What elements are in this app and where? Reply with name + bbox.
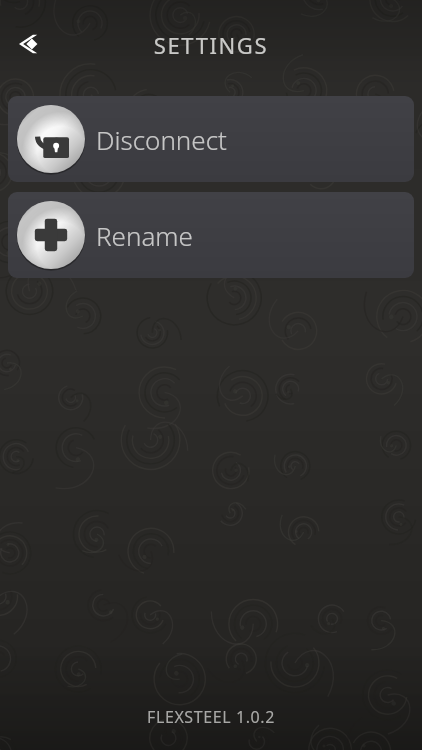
button[interactable]: Disconnect [8,96,414,182]
staticText: FLEXSTEEL 1.0.2 [0,706,422,728]
button[interactable]: Back [6,22,50,66]
staticText: Disconnect [96,122,227,157]
staticText: Rename [96,218,193,253]
staticText: SETTINGS [0,30,422,60]
button[interactable]: Rename [8,192,414,278]
